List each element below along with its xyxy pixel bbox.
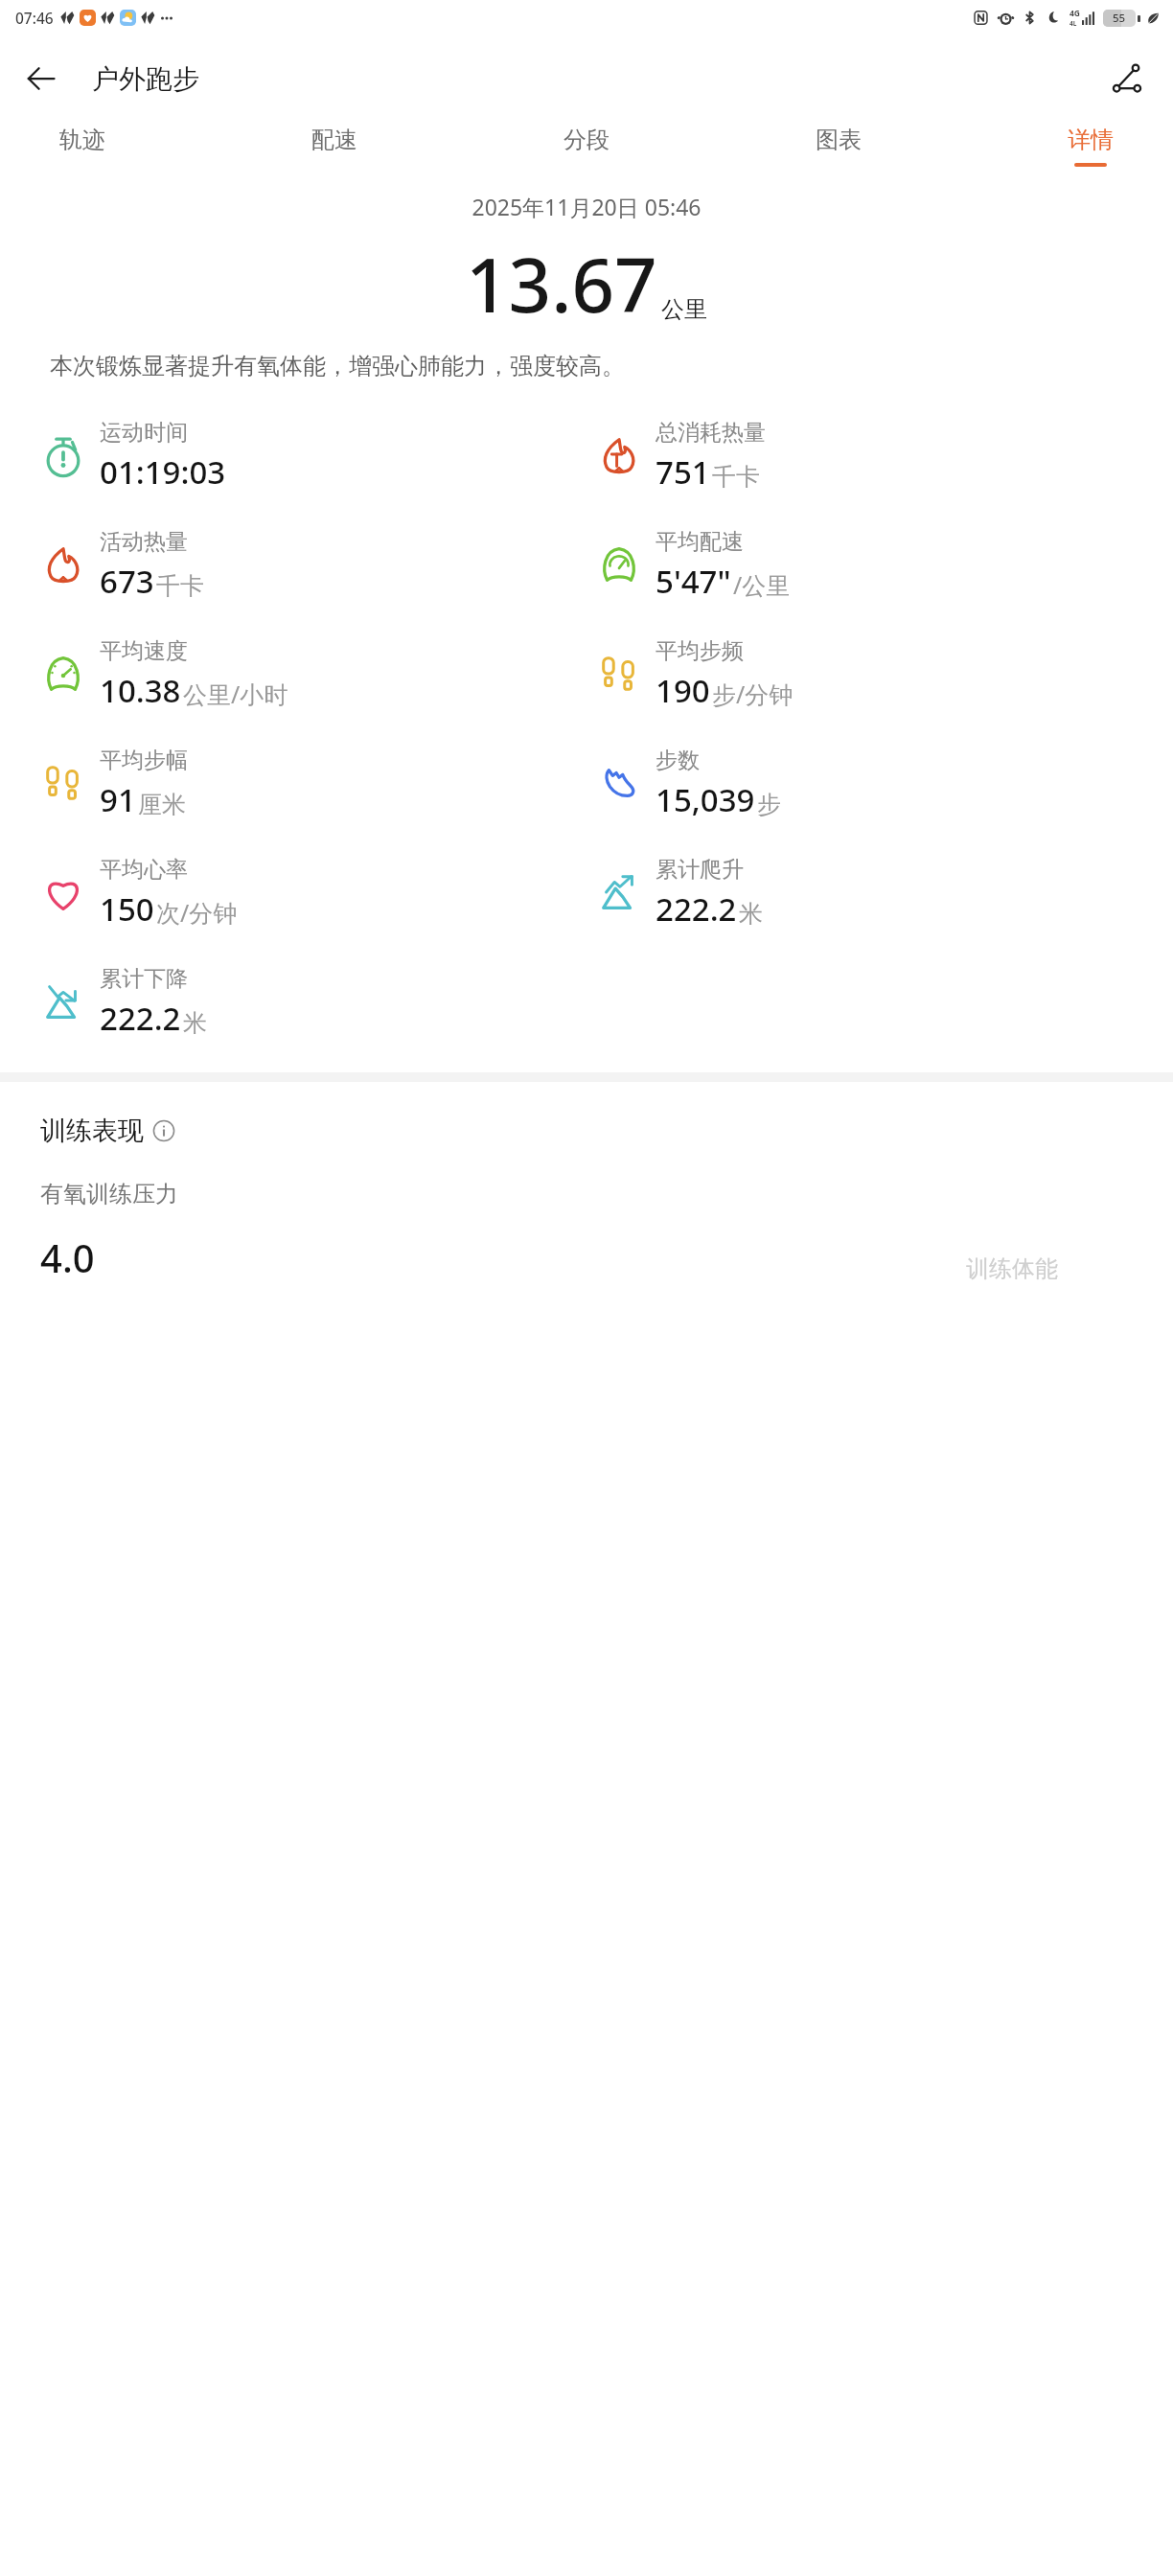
staticText: 厘米 [138,790,186,819]
staticText: 总消耗热量 [655,419,766,447]
button[interactable]: 详情 [1062,122,1119,171]
staticText: 15,039 [655,778,755,821]
staticText: 4.0 [40,1231,95,1283]
staticText: 4G [1069,8,1081,19]
button[interactable]: Back [13,51,69,106]
staticText: /公里 [733,568,791,601]
staticText: 13.67 [466,233,657,334]
staticText: 公里 [661,295,707,324]
staticText: 步/分钟 [712,678,793,710]
staticText: 活动热量 [100,528,188,556]
staticText: 米 [183,1008,207,1038]
staticText: 673 [100,560,154,603]
staticText: 分段 [563,126,609,154]
staticText: 本次锻炼显著提升有氧体能，增强心肺能力，强度较高。 [50,352,1123,380]
staticText: 轨迹 [59,126,105,154]
staticText: 07:46 [15,8,54,28]
button[interactable]: 累计下降 [40,948,207,1057]
staticText: 步数 [655,747,700,774]
staticText: 公里/小时 [183,678,288,710]
staticText: 配速 [311,126,357,154]
button[interactable]: 平均步幅 [40,729,188,839]
staticText: 图表 [816,126,862,154]
button[interactable]: 配速 [306,122,363,171]
staticText: 4L [1069,19,1077,28]
staticText: 平均速度 [100,637,188,665]
staticText: 步 [757,790,781,819]
staticText: 平均步幅 [100,747,188,774]
button[interactable]: 平均心率 [40,839,238,948]
other: Info [152,1119,175,1142]
staticText: 平均心率 [100,856,188,884]
button[interactable]: 运动时间 [40,402,226,511]
button[interactable]: 平均步频 [596,620,793,729]
button[interactable]: 步数 [596,729,781,839]
staticText: 10.38 [100,669,181,712]
button[interactable]: 分段 [558,122,615,171]
staticText: 222.2 [655,887,737,931]
staticText: 5'47" [655,560,731,603]
staticText: 米 [739,899,763,929]
button[interactable]: 轨迹 [54,122,111,171]
staticText: 详情 [1068,126,1114,154]
staticText: 累计爬升 [655,856,744,884]
button[interactable]: Share [1100,52,1154,105]
staticText: 有氧训练压力 [40,1180,178,1208]
staticText: 运动时间 [100,419,188,447]
staticText: 190 [655,669,710,712]
button[interactable]: 图表 [810,122,867,171]
button[interactable]: 累计爬升 [596,839,763,948]
staticText: 55 [1113,11,1126,26]
staticText: 751 [655,450,710,494]
staticText: 次/分钟 [156,896,238,929]
button[interactable]: 平均配速 [596,511,791,620]
button[interactable]: 训练表现 [40,1115,175,1147]
staticText: 训练体能 [966,1254,1058,1283]
staticText: 150 [100,887,154,931]
staticText: 平均步频 [655,637,744,665]
staticText: 222.2 [100,997,181,1040]
staticText: 训练表现 [40,1115,144,1147]
button[interactable]: 总消耗热量 [596,402,766,511]
staticText: 累计下降 [100,965,188,993]
button[interactable]: 平均速度 [40,620,288,729]
staticText: 91 [100,778,136,821]
staticText: 千卡 [156,571,204,601]
staticText: 千卡 [712,462,760,492]
staticText: 01:19:03 [100,450,226,494]
staticText: 户外跑步 [92,62,199,96]
staticText: 平均配速 [655,528,744,556]
staticText: 2025年11月20日 05:46 [471,192,701,221]
button[interactable]: 活动热量 [40,511,204,620]
